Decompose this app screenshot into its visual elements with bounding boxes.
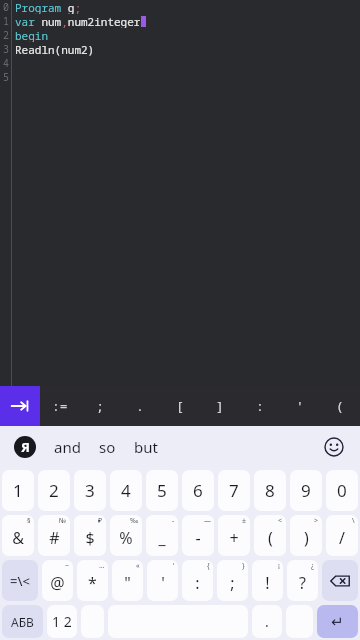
button[interactable]: 6 — [182, 470, 214, 511]
staticText: 3 — [3, 42, 9, 56]
staticText: " — [124, 572, 131, 594]
staticText: 0 — [337, 479, 347, 502]
button[interactable]: =\< — [2, 560, 38, 601]
button[interactable]: « — [112, 560, 143, 601]
button[interactable]: Tab — [0, 386, 40, 426]
button[interactable]: ± — [218, 515, 250, 556]
staticText: ; — [230, 572, 235, 594]
staticText: ± — [242, 516, 247, 526]
staticText: « — [136, 561, 140, 571]
button[interactable]: < — [254, 515, 286, 556]
button[interactable]: 8 — [254, 470, 286, 511]
staticText: 4 — [3, 56, 9, 70]
button[interactable]: 5 — [146, 470, 178, 511]
staticText: 6 — [193, 479, 203, 502]
button[interactable]: ( — [320, 386, 360, 426]
staticText: / — [339, 527, 345, 549]
button[interactable]: Enter — [317, 605, 358, 638]
staticText: but — [134, 437, 158, 457]
staticText: 9 — [301, 479, 311, 502]
staticText: @ — [50, 572, 65, 594]
staticText: [ — [176, 397, 184, 415]
button[interactable]: 3 — [74, 470, 106, 511]
button[interactable]: : — [240, 386, 280, 426]
staticText: 1 — [13, 479, 23, 502]
button[interactable]: Emoji — [322, 435, 346, 459]
staticText: begin — [15, 28, 48, 42]
button[interactable]: > — [290, 515, 322, 556]
button[interactable]: but — [134, 437, 158, 457]
button[interactable]: № — [38, 515, 70, 556]
button[interactable]: . — [120, 386, 160, 426]
button[interactable]: [ — [160, 386, 200, 426]
button[interactable]: 1 — [2, 470, 34, 511]
button[interactable]: ~ — [42, 560, 73, 601]
button[interactable]: … — [77, 560, 108, 601]
staticText: № — [59, 516, 67, 526]
button[interactable]: Settings — [81, 605, 104, 638]
staticText: Program g; — [15, 0, 81, 14]
staticText: . — [136, 397, 144, 415]
staticText: ~ — [65, 561, 70, 571]
button[interactable]: ‘ — [147, 560, 178, 601]
staticText: ( — [336, 397, 344, 415]
staticText: ! — [265, 572, 270, 594]
staticText: ' — [161, 572, 165, 594]
staticText: =\< — [10, 572, 30, 590]
button[interactable]: ¡ — [252, 560, 283, 601]
staticText: and — [54, 437, 81, 457]
button[interactable]: . — [252, 605, 282, 638]
staticText: - — [195, 527, 201, 549]
button[interactable]: Backspace — [322, 560, 358, 601]
staticText: : — [195, 572, 200, 594]
staticText: ( — [268, 527, 273, 549]
button[interactable]: 9 — [290, 470, 322, 511]
button[interactable]: Yandex keyboard menu — [14, 436, 36, 458]
button[interactable]: ' — [280, 386, 320, 426]
button[interactable]: 2 — [38, 470, 70, 511]
staticText: ' — [296, 397, 304, 415]
button[interactable]: 4 — [110, 470, 142, 511]
button[interactable]: АБВ — [2, 605, 43, 638]
staticText: 1 2 — [52, 612, 72, 631]
button[interactable]: ‰ — [110, 515, 142, 556]
button[interactable]: \ — [326, 515, 358, 556]
staticText: ) — [304, 527, 309, 549]
button[interactable]: ] — [200, 386, 240, 426]
button[interactable]: — — [182, 515, 214, 556]
button[interactable]: 1 2 — [47, 605, 77, 638]
button[interactable]: - — [146, 515, 178, 556]
button[interactable]: := — [40, 386, 80, 426]
staticText: 7 — [229, 479, 239, 502]
button[interactable]: 7 — [218, 470, 250, 511]
staticText: … — [99, 561, 105, 571]
button[interactable]: § — [2, 515, 34, 556]
staticText: ¿ — [311, 561, 315, 571]
staticText: 5 — [157, 479, 167, 502]
button[interactable]: } — [217, 560, 248, 601]
button[interactable] — [286, 605, 313, 638]
staticText: ? — [299, 572, 306, 594]
staticText: % — [119, 527, 133, 549]
button[interactable]: ₽ — [74, 515, 106, 556]
staticText: 5 — [3, 70, 9, 84]
staticText: := — [52, 397, 68, 415]
staticText: } — [242, 561, 245, 571]
button[interactable]: ¿ — [287, 560, 318, 601]
staticText: 8 — [265, 479, 275, 502]
staticText: 1 — [3, 14, 9, 28]
button[interactable]: { — [182, 560, 213, 601]
staticText: — — [204, 516, 211, 526]
staticText: & — [12, 527, 24, 549]
staticText: var num,num2integer — [15, 14, 141, 28]
staticText: < — [278, 516, 283, 526]
staticText: § — [27, 516, 31, 526]
button[interactable]: ; — [80, 386, 120, 426]
button[interactable]: so — [99, 437, 116, 457]
button[interactable]: 0 — [326, 470, 358, 511]
staticText: ↵ — [331, 613, 344, 630]
staticText: > — [314, 516, 319, 526]
staticText: - — [172, 516, 175, 526]
button[interactable]: and — [54, 437, 81, 457]
